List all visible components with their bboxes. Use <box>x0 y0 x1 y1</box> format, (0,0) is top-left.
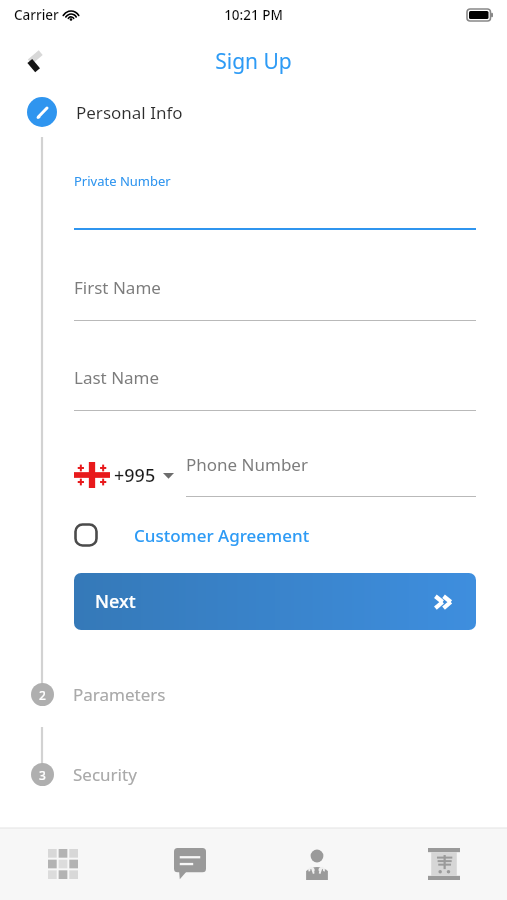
button[interactable]: Dashboard <box>0 828 126 900</box>
staticText: Private Number <box>74 172 171 190</box>
button[interactable]: 3 <box>31 758 507 790</box>
staticText: 3 <box>39 767 46 783</box>
staticText: Parameters <box>73 683 166 706</box>
button[interactable]: First Name <box>74 276 476 321</box>
staticText: Security <box>73 763 137 786</box>
staticText: 10:21 PM <box>224 6 283 24</box>
button[interactable]: Messages <box>126 828 253 900</box>
button[interactable]: Last Name <box>74 366 476 411</box>
button[interactable]: Doctors <box>253 828 380 900</box>
staticText: First Name <box>74 276 161 299</box>
button[interactable]: Phone Number <box>186 453 476 497</box>
staticText: Carrier <box>14 6 59 24</box>
button[interactable]: Records <box>380 828 507 900</box>
staticText: Phone Number <box>186 453 308 476</box>
button[interactable]: +995 <box>74 456 174 494</box>
button[interactable]: Private Number <box>74 172 476 230</box>
staticText: Last Name <box>74 366 160 389</box>
button[interactable]: Next <box>74 573 476 630</box>
button[interactable]: Back <box>12 38 58 84</box>
staticText: 2 <box>39 687 46 703</box>
staticText: Personal Info <box>76 101 183 124</box>
staticText: Next <box>95 589 136 614</box>
staticText: +995 <box>114 463 156 488</box>
button[interactable]: Customer Agreement <box>74 523 310 547</box>
staticText: Customer Agreement <box>134 524 310 547</box>
button[interactable]: 2 <box>31 678 507 710</box>
staticText: Sign Up <box>215 47 292 76</box>
